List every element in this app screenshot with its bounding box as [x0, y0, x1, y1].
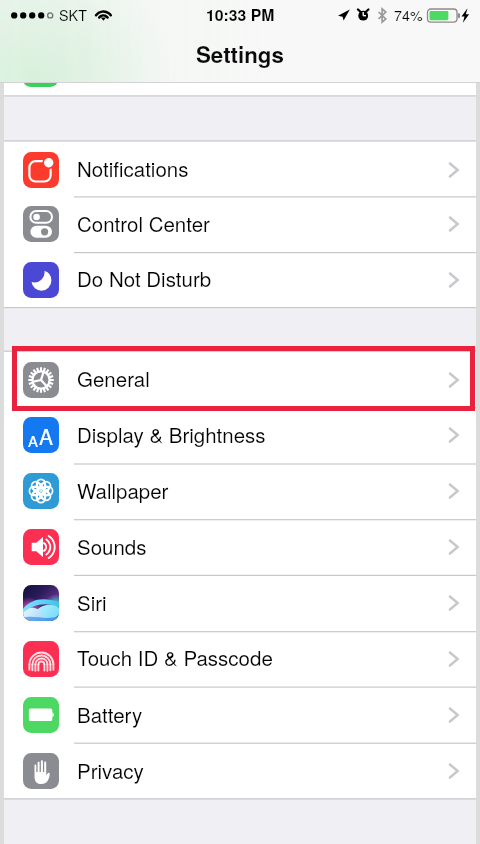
staticText: 74% — [394, 5, 423, 25]
staticText: Display & Brightness — [77, 419, 266, 448]
staticText: Siri — [77, 587, 107, 616]
button[interactable]: Wallpaper — [4, 463, 476, 519]
staticText: General — [77, 363, 150, 392]
button[interactable]: Touch ID & Passcode — [4, 631, 476, 686]
button[interactable]: Battery — [4, 687, 476, 743]
staticText: Touch ID & Passcode — [77, 642, 273, 671]
staticText: Control Center — [77, 208, 210, 237]
button[interactable]: Siri — [4, 575, 476, 631]
button[interactable]: Do Not Disturb — [4, 252, 476, 307]
button[interactable]: Control Center — [4, 196, 476, 252]
staticText: Settings — [196, 38, 284, 70]
staticText: A — [28, 430, 39, 451]
staticText: Battery — [77, 699, 143, 728]
staticText: Sounds — [77, 531, 147, 560]
staticText: Do Not Disturb — [77, 263, 212, 292]
button[interactable]: Notifications — [4, 142, 476, 197]
button[interactable]: Privacy — [4, 743, 476, 799]
button[interactable]: Sounds — [4, 519, 476, 575]
staticText: Privacy — [77, 755, 144, 784]
staticText: Notifications — [77, 153, 189, 182]
staticText: Wallpaper — [77, 475, 169, 504]
staticText: 10:33 PM — [206, 3, 275, 26]
staticText: A — [39, 421, 54, 451]
button[interactable]: General — [4, 352, 476, 407]
staticText: SKT — [59, 5, 88, 25]
button[interactable]: A — [4, 407, 476, 463]
